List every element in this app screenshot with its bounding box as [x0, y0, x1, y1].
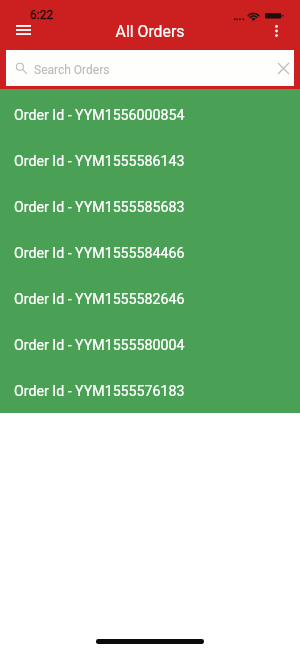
staticText: Order Id - YYM1555582646 — [14, 291, 185, 308]
button[interactable]: Clear search — [272, 57, 294, 79]
button[interactable]: Order Id - YYM1555585683 — [0, 184, 300, 230]
button[interactable]: Search Orders — [6, 50, 294, 86]
staticText: Search Orders — [34, 63, 110, 77]
staticText: Order Id - YYM1555584466 — [14, 245, 185, 262]
button[interactable]: Order Id - YYM1555586143 — [0, 138, 300, 184]
staticText: Order Id - YYM1555580004 — [14, 337, 185, 354]
button[interactable]: Order Id - YYM1555584466 — [0, 230, 300, 276]
staticText: Order Id - YYM1555586143 — [14, 153, 185, 170]
button[interactable]: More options — [265, 19, 288, 43]
button[interactable]: Order Id - YYM1555582646 — [0, 276, 300, 322]
staticText: Order Id - YYM1555576183 — [14, 383, 185, 400]
staticText: All Orders — [0, 22, 300, 41]
staticText: 6:22 — [30, 8, 54, 22]
button[interactable]: Order Id - YYM1556000854 — [0, 92, 300, 138]
button[interactable]: Order Id - YYM1555580004 — [0, 322, 300, 368]
button[interactable]: Order Id - YYM1555576183 — [0, 368, 300, 414]
button[interactable]: Open navigation drawer — [8, 16, 38, 44]
staticText: Order Id - YYM1555585683 — [14, 199, 185, 216]
staticText: Order Id - YYM1556000854 — [14, 107, 185, 124]
